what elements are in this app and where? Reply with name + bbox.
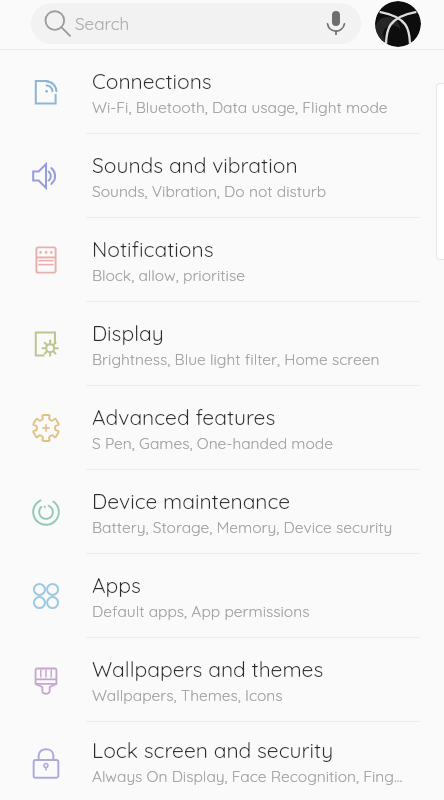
staticText: Block, allow, prioritise bbox=[92, 265, 245, 284]
staticText: Lock screen and security bbox=[92, 737, 334, 763]
button[interactable]: Wallpapers and themes bbox=[0, 638, 444, 722]
staticText: Sounds and vibration bbox=[92, 152, 298, 178]
button[interactable]: Lock screen and security bbox=[0, 722, 444, 800]
staticText: Apps bbox=[92, 572, 141, 598]
staticText: Device maintenance bbox=[92, 488, 291, 514]
staticText: Always On Display, Face Recognition, Fin… bbox=[92, 766, 403, 785]
button[interactable]: Account bbox=[375, 1, 421, 47]
staticText: Battery, Storage, Memory, Device securit… bbox=[92, 517, 393, 536]
staticText: Default apps, App permissions bbox=[92, 601, 310, 620]
button[interactable]: Sounds and vibration bbox=[0, 134, 444, 218]
staticText: Wi-Fi, Bluetooth, Data usage, Flight mod… bbox=[92, 97, 388, 116]
staticText: Wallpapers and themes bbox=[92, 656, 324, 682]
button[interactable]: Display bbox=[0, 302, 444, 386]
staticText: Brightness, Blue light filter, Home scre… bbox=[92, 349, 380, 368]
button[interactable]: Notifications bbox=[0, 218, 444, 302]
button[interactable]: Device maintenance bbox=[0, 470, 444, 554]
button[interactable]: Connections bbox=[0, 50, 444, 134]
staticText: Notifications bbox=[92, 236, 214, 262]
staticText: Connections bbox=[92, 68, 212, 94]
button[interactable]: Apps bbox=[0, 554, 444, 638]
staticText: Wallpapers, Themes, Icons bbox=[92, 685, 283, 704]
button[interactable]: Advanced features bbox=[0, 386, 444, 470]
staticText: Advanced features bbox=[92, 404, 276, 430]
staticText: S Pen, Games, One-handed mode bbox=[92, 433, 333, 452]
staticText: Search bbox=[75, 13, 130, 34]
staticText: Display bbox=[92, 320, 164, 346]
staticText: Sounds, Vibration, Do not disturb bbox=[92, 181, 327, 200]
button[interactable]: Search bbox=[31, 3, 361, 44]
button[interactable]: Voice search bbox=[316, 4, 356, 44]
